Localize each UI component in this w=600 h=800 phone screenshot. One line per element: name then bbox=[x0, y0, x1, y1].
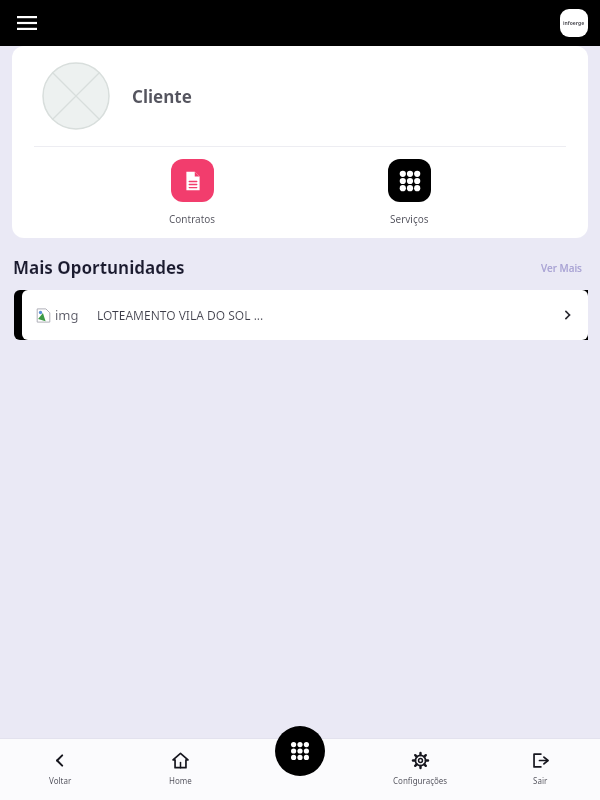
button[interactable]: Menu bbox=[10, 6, 44, 40]
staticText: Cliente bbox=[132, 85, 192, 108]
staticText: Sair bbox=[533, 775, 548, 786]
button[interactable]: Configurações bbox=[360, 738, 480, 800]
staticText: Mais Oportunidades bbox=[13, 256, 185, 279]
button[interactable]: Apps bbox=[275, 726, 325, 776]
staticText: Home bbox=[169, 775, 192, 786]
staticText: Configurações bbox=[393, 775, 448, 786]
staticText: img bbox=[55, 306, 79, 324]
button[interactable]: Serviços bbox=[374, 155, 445, 230]
button[interactable]: Logo bbox=[560, 9, 588, 37]
button[interactable]: Voltar bbox=[0, 738, 120, 800]
staticText: Voltar bbox=[49, 775, 72, 786]
button[interactable]: Home bbox=[120, 738, 240, 800]
button[interactable]: Contratos bbox=[155, 155, 230, 230]
button[interactable]: Sair bbox=[480, 738, 600, 800]
staticText: Contratos bbox=[169, 212, 216, 226]
staticText: Ver Mais bbox=[541, 261, 582, 275]
button[interactable]: Ver Mais bbox=[537, 257, 586, 279]
staticText: Serviços bbox=[390, 212, 429, 226]
staticText: infoerge bbox=[563, 20, 585, 27]
staticText: LOTEAMENTO VILA DO SOL ... bbox=[97, 307, 264, 323]
button[interactable]: img bbox=[14, 290, 588, 340]
